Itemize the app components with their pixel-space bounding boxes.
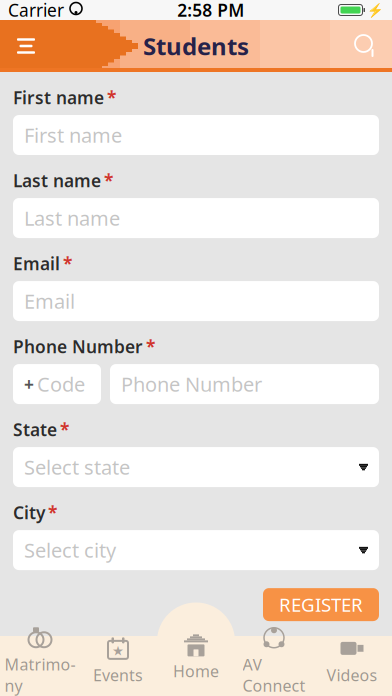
button[interactable]: Select state <box>13 447 379 487</box>
staticText: Events <box>93 664 143 686</box>
staticText: * <box>104 169 113 192</box>
button[interactable]: First name <box>13 115 379 155</box>
staticText: Email <box>24 288 75 314</box>
staticText: REGISTER <box>279 592 363 617</box>
button[interactable]: Videos <box>313 634 391 696</box>
button[interactable]: Phone Number <box>110 364 379 404</box>
staticText: Select state <box>24 454 130 480</box>
staticText: Select city <box>24 537 116 563</box>
button[interactable]: Select city <box>13 530 379 570</box>
staticText: First name <box>24 122 122 148</box>
button[interactable]: Matrimony <box>1 634 79 696</box>
staticText: First name <box>13 86 104 109</box>
button[interactable]: Menu <box>0 20 52 72</box>
button[interactable]: Last name <box>13 198 379 238</box>
staticText: ★ <box>112 643 124 658</box>
button[interactable]: REGISTER <box>263 588 379 621</box>
staticText: Last name <box>13 169 101 192</box>
staticText: * <box>48 501 57 524</box>
staticText: State <box>13 418 57 441</box>
button[interactable]: Email <box>13 281 379 321</box>
staticText: Matrimony <box>4 654 75 696</box>
staticText: Videos <box>326 664 377 686</box>
button[interactable]: Home <box>157 634 235 696</box>
staticText: Phone Number <box>121 371 262 397</box>
staticText: Carrier <box>8 0 64 21</box>
staticText: Students <box>143 30 249 62</box>
staticText: Home <box>173 660 219 682</box>
staticText: ⚡ <box>367 2 384 18</box>
button[interactable]: AV Connect <box>235 634 313 696</box>
staticText: Code <box>37 371 85 397</box>
button[interactable]: + <box>13 364 101 404</box>
staticText: * <box>63 252 72 275</box>
button[interactable]: ★ <box>79 634 157 696</box>
staticText: + <box>24 373 34 396</box>
staticText: City <box>13 501 45 524</box>
button[interactable]: Search <box>340 20 392 72</box>
staticText: Email <box>13 252 60 275</box>
staticText: Phone Number <box>13 335 143 358</box>
staticText: * <box>107 86 116 109</box>
staticText: * <box>60 418 69 441</box>
staticText: AV Connect <box>242 654 305 696</box>
staticText: * <box>146 335 155 358</box>
staticText: Last name <box>24 205 120 231</box>
staticText: 2:58 PM <box>177 0 244 21</box>
